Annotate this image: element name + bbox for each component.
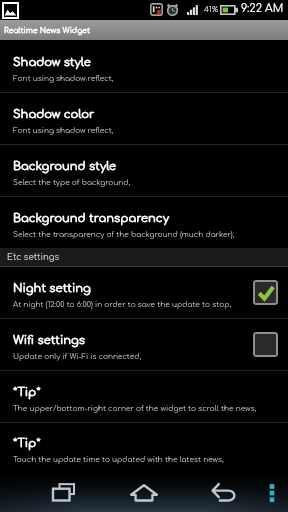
button[interactable]: Shadow color [0,93,288,144]
staticText: Shadow color [13,108,95,121]
button[interactable]: Back [200,477,248,507]
button[interactable]: Background transparency [0,197,288,248]
button[interactable]: More options [248,477,288,507]
button[interactable]: *Tip* [0,423,288,472]
staticText: Night setting [13,282,91,295]
staticText: 9:22 AM [241,2,284,14]
staticText: Background style [13,160,117,173]
button[interactable]: Disabled [253,332,278,357]
staticText: Font using shadow reflect, [13,74,114,82]
button[interactable]: Shadow style [0,41,288,92]
button[interactable]: Wifi settings [0,319,288,370]
staticText: Select the type of background, [13,178,131,186]
button[interactable]: Night setting [0,267,288,318]
staticText: Touch the update time to updated with th… [13,455,224,463]
staticText: Shadow style [13,56,91,69]
staticText: At night (12:00 to 6:00) in order to sav… [13,300,232,308]
staticText: 41% [204,5,219,13]
staticText: Background transparency [13,212,169,225]
staticText: Etc settings [7,253,60,262]
staticText: Wifi settings [13,334,86,347]
staticText: Realtime News Widget [4,26,91,34]
button[interactable]: *Tip* [0,371,288,422]
button[interactable]: Enabled [253,280,278,305]
button[interactable]: Home [120,477,168,507]
staticText: Select the transparency of the backgroun… [13,230,235,238]
staticText: *Tip* [13,437,41,450]
staticText: Update only if Wi-Fi is connected, [13,352,142,360]
staticText: Font using shadow reflect, [13,126,114,134]
button[interactable]: Recent apps [40,477,88,507]
button[interactable]: Background style [0,145,288,196]
staticText: The upper/bottom-right corner of the wid… [13,404,257,412]
staticText: *Tip* [13,386,41,399]
